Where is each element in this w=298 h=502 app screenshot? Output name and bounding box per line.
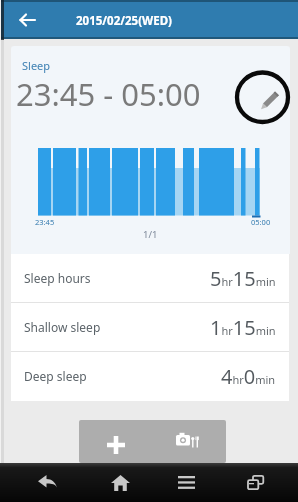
button[interactable]	[12, 6, 42, 34]
staticText: 23:45	[35, 217, 55, 227]
button[interactable]	[152, 420, 226, 463]
staticText: Sleep hours	[24, 270, 91, 286]
button[interactable]	[153, 463, 219, 502]
button[interactable]: Deep sleep	[11, 352, 289, 400]
button[interactable]: Sleep hours	[11, 254, 289, 302]
button[interactable]	[222, 463, 288, 502]
staticText: 4hr0min	[221, 363, 276, 390]
button[interactable]	[234, 69, 292, 126]
button[interactable]	[87, 463, 153, 502]
staticText: 05:00	[251, 217, 271, 227]
staticText: 5hr15min	[210, 265, 276, 292]
staticText: Sleep	[22, 58, 51, 73]
staticText: 1/1	[143, 228, 158, 241]
staticText: Shallow sleep	[24, 319, 101, 335]
staticText: Deep sleep	[24, 368, 87, 384]
staticText: 2015/02/25(WED)	[76, 13, 172, 29]
button[interactable]	[14, 463, 80, 502]
button[interactable]: Shallow sleep	[11, 303, 289, 351]
staticText: 1hr15min	[210, 314, 276, 341]
staticText: 23:45 - 05:00	[16, 73, 201, 115]
button[interactable]	[79, 420, 152, 463]
